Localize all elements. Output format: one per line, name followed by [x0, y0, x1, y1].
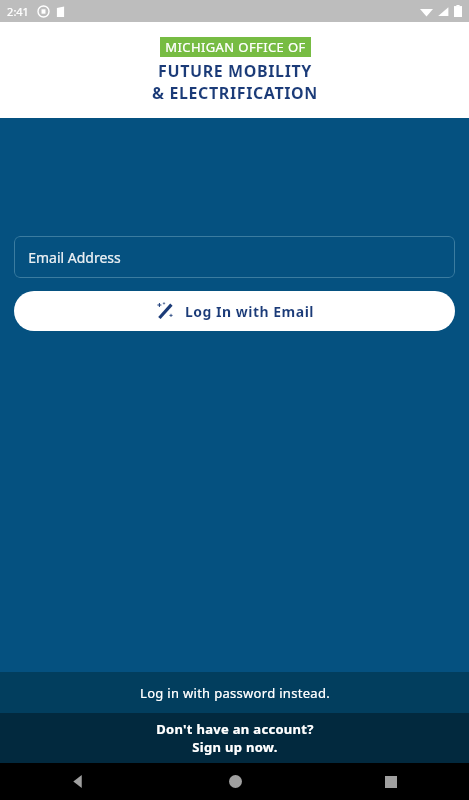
- button[interactable]: Email Address: [14, 236, 455, 278]
- staticText: & ELECTRIFICATION: [152, 82, 318, 104]
- staticText: 2:41: [7, 4, 29, 19]
- staticText: Log In with Email: [185, 302, 314, 321]
- button[interactable]: Back: [0, 763, 157, 800]
- staticText: MICHIGAN OFFICE OF: [165, 38, 306, 56]
- button[interactable]: Log In with Email: [14, 291, 455, 331]
- staticText: Don't have an account?: [156, 720, 314, 738]
- button[interactable]: Log in with password instead.: [0, 672, 469, 713]
- button[interactable]: Don't have an account?: [0, 713, 469, 763]
- button[interactable]: Recent apps: [313, 763, 469, 800]
- staticText: Log in with password instead.: [140, 684, 330, 702]
- staticText: Sign up now.: [192, 738, 278, 756]
- staticText: Email Address: [28, 248, 121, 267]
- staticText: FUTURE MOBILITY: [158, 60, 312, 82]
- button[interactable]: Home: [157, 763, 313, 800]
